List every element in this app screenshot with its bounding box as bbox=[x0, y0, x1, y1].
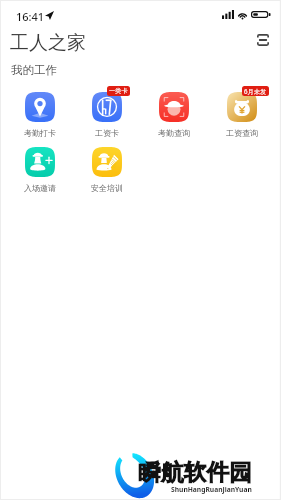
staticText: 安全培训 bbox=[91, 183, 123, 193]
staticText: 工人之家 bbox=[10, 31, 86, 55]
button[interactable]: 工资卡 bbox=[77, 86, 137, 136]
button[interactable]: 工资查询 bbox=[212, 86, 272, 136]
staticText: 瞬航软件园 bbox=[138, 458, 252, 486]
staticText: 16:41 bbox=[16, 9, 45, 24]
button[interactable]: 考勤查询 bbox=[144, 86, 204, 136]
staticText: 6月未发 bbox=[244, 87, 267, 95]
staticText: 工资查询 bbox=[226, 128, 258, 138]
staticText: 一类卡 bbox=[109, 87, 128, 95]
staticText: 考勤查询 bbox=[158, 128, 190, 138]
button[interactable]: Split screen bbox=[252, 29, 273, 50]
button[interactable]: 安全培训 bbox=[77, 141, 137, 191]
button[interactable]: 考勤打卡 bbox=[10, 86, 70, 136]
staticText: ShunHangRuanJianYuan bbox=[171, 485, 252, 494]
button[interactable]: 入场邀请 bbox=[10, 141, 70, 191]
staticText: 我的工作 bbox=[11, 63, 57, 77]
staticText: 工资卡 bbox=[95, 128, 119, 138]
staticText: 入场邀请 bbox=[24, 183, 56, 193]
staticText: 考勤打卡 bbox=[24, 128, 56, 138]
